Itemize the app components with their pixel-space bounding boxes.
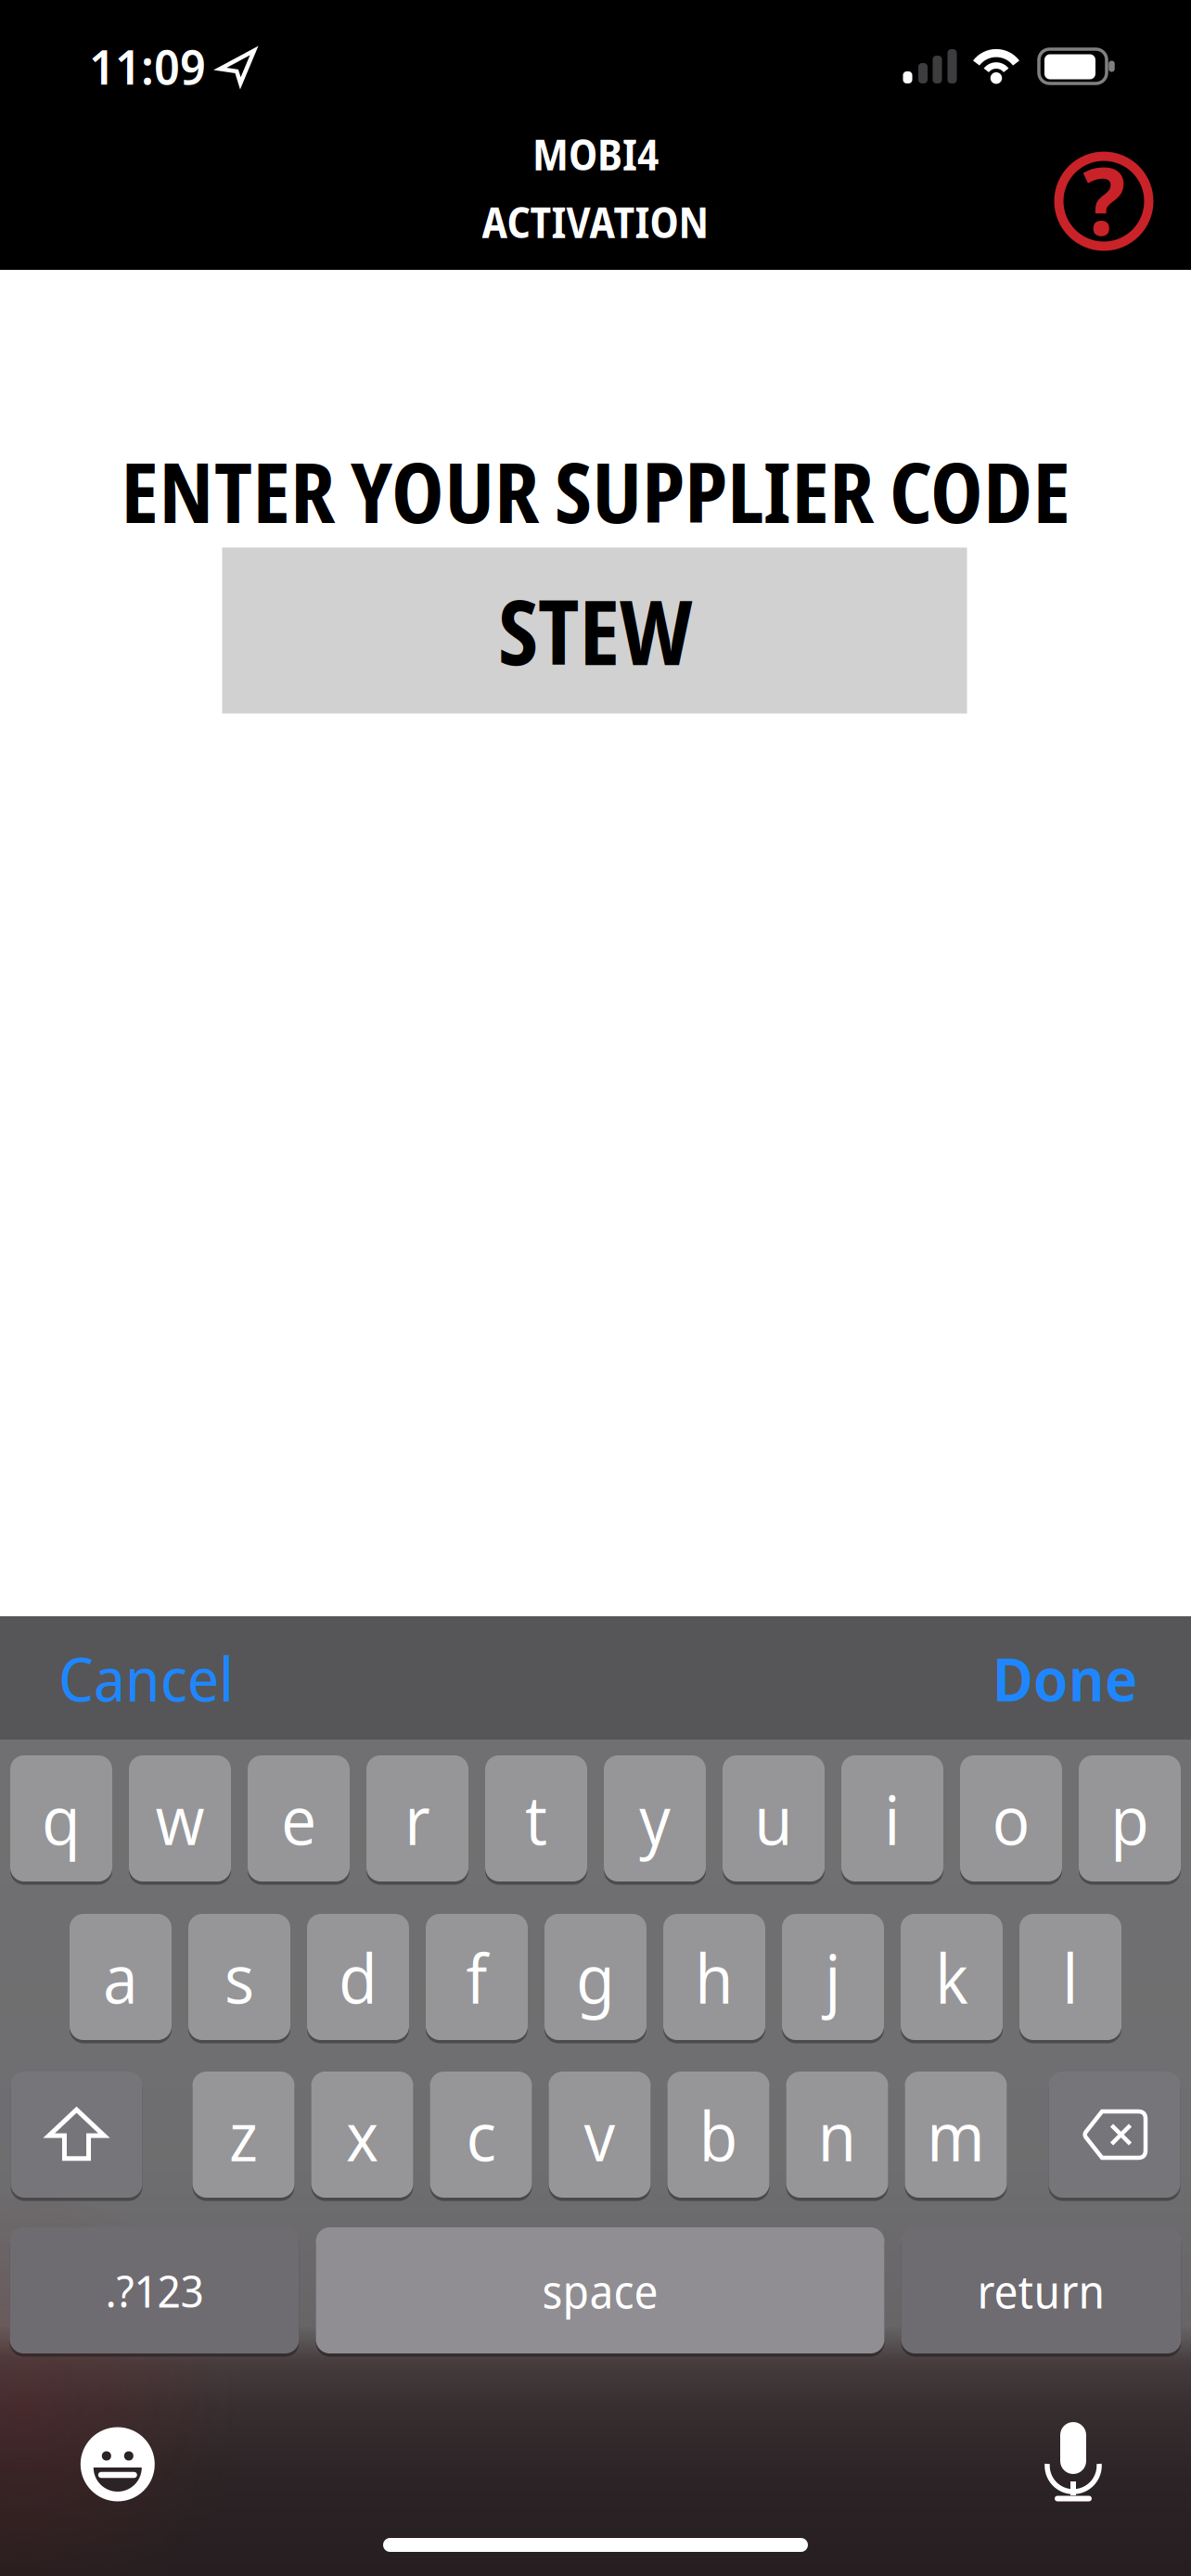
staticText: .?123 <box>105 2260 204 2321</box>
button[interactable]: f <box>426 1914 528 2040</box>
staticText: return <box>977 2259 1105 2322</box>
button[interactable]: s <box>188 1914 290 2040</box>
staticText: e <box>281 1772 316 1865</box>
staticText: g <box>576 1930 615 2024</box>
staticText: i <box>884 1772 901 1865</box>
staticText: m <box>927 2088 985 2181</box>
button[interactable]: t <box>485 1755 587 1881</box>
button[interactable]: u <box>723 1755 825 1881</box>
staticText: l <box>1062 1930 1079 2024</box>
staticText: 11:09 <box>89 33 206 99</box>
button[interactable]: ? <box>1053 150 1155 252</box>
button[interactable]: space <box>316 2227 884 2353</box>
staticText: x <box>346 2088 378 2181</box>
button[interactable] <box>11 2072 142 2198</box>
staticText: f <box>466 1930 487 2024</box>
staticText: p <box>1110 1772 1149 1865</box>
button[interactable] <box>1031 2420 1115 2503</box>
button[interactable]: b <box>667 2072 769 2198</box>
button[interactable]: p <box>1079 1755 1181 1881</box>
staticText: b <box>699 2088 738 2181</box>
button[interactable]: o <box>960 1755 1062 1881</box>
staticText: r <box>404 1772 430 1865</box>
staticText: ? <box>1082 136 1125 263</box>
button[interactable]: j <box>782 1914 884 2040</box>
button[interactable]: r <box>366 1755 468 1881</box>
button[interactable]: i <box>841 1755 943 1881</box>
staticText: q <box>42 1772 81 1865</box>
staticText: k <box>935 1930 968 2024</box>
button[interactable]: return <box>901 2227 1181 2353</box>
staticText: s <box>224 1930 254 2024</box>
staticText: v <box>584 2088 615 2181</box>
button[interactable]: q <box>10 1755 112 1881</box>
button[interactable] <box>81 2427 155 2501</box>
staticText: h <box>695 1930 734 2024</box>
button[interactable]: c <box>430 2072 532 2198</box>
staticText: o <box>992 1772 1030 1865</box>
staticText: space <box>542 2259 658 2322</box>
staticText: Cancel <box>58 1636 234 1720</box>
button[interactable]: STEW <box>222 548 967 714</box>
button[interactable]: a <box>70 1914 172 2040</box>
button[interactable]: Cancel <box>58 1636 234 1720</box>
staticText: j <box>825 1930 841 2024</box>
button[interactable]: v <box>549 2072 651 2198</box>
staticText: u <box>754 1772 793 1865</box>
staticText: t <box>525 1772 547 1865</box>
staticText: y <box>639 1772 671 1865</box>
button[interactable] <box>1049 2072 1180 2198</box>
staticText: MOBI4 <box>532 125 659 183</box>
staticText: a <box>103 1930 138 2024</box>
button[interactable]: x <box>311 2072 413 2198</box>
button[interactable]: h <box>663 1914 765 2040</box>
staticText: c <box>466 2088 496 2181</box>
button[interactable]: n <box>786 2072 888 2198</box>
button[interactable]: w <box>129 1755 231 1881</box>
button[interactable]: y <box>604 1755 706 1881</box>
button[interactable]: Done <box>992 1637 1137 1719</box>
staticText: w <box>155 1772 205 1865</box>
button[interactable]: .?123 <box>10 2227 299 2353</box>
button[interactable]: d <box>307 1914 409 2040</box>
button[interactable]: m <box>905 2072 1007 2198</box>
button[interactable]: e <box>248 1755 350 1881</box>
staticText: ACTIVATION <box>482 193 709 251</box>
button[interactable]: k <box>901 1914 1003 2040</box>
button[interactable]: l <box>1019 1914 1121 2040</box>
button[interactable]: g <box>544 1914 647 2040</box>
staticText: n <box>818 2088 857 2181</box>
staticText: Done <box>992 1637 1137 1719</box>
staticText: ENTER YOUR SUPPLIER CODE <box>121 434 1070 547</box>
staticText: STEW <box>498 570 691 691</box>
staticText: z <box>229 2088 258 2181</box>
staticText: d <box>339 1930 378 2024</box>
button[interactable]: z <box>192 2072 295 2198</box>
